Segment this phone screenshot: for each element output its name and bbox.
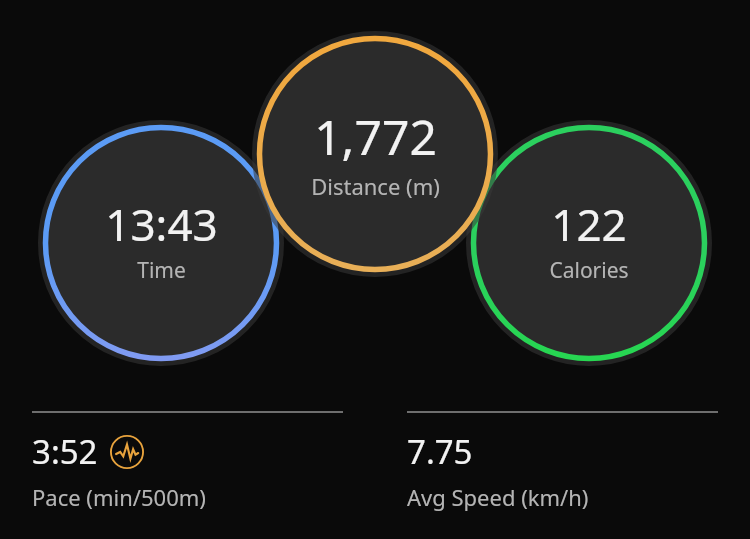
staticText: Calories bbox=[549, 256, 629, 285]
staticText: 7.75 bbox=[407, 429, 473, 474]
button[interactable]: Time 13:43 bbox=[40, 122, 282, 364]
staticText: 122 bbox=[551, 194, 627, 254]
button[interactable]: 3:52 bbox=[32, 400, 343, 539]
button[interactable]: Calories 122 bbox=[468, 122, 710, 364]
staticText: Pace (min/500m) bbox=[32, 482, 206, 512]
button[interactable]: 7.75 bbox=[407, 400, 718, 539]
staticText: 1,772 bbox=[314, 104, 437, 169]
button[interactable]: Distance 1,772 meters bbox=[254, 33, 496, 275]
staticText: Avg Speed (km/h) bbox=[407, 482, 589, 512]
staticText: 3:52 bbox=[32, 429, 98, 474]
staticText: 13:43 bbox=[105, 194, 218, 254]
staticText: Distance (m) bbox=[311, 171, 440, 201]
other: Pace trend bbox=[110, 435, 144, 469]
staticText: Time bbox=[137, 256, 186, 285]
